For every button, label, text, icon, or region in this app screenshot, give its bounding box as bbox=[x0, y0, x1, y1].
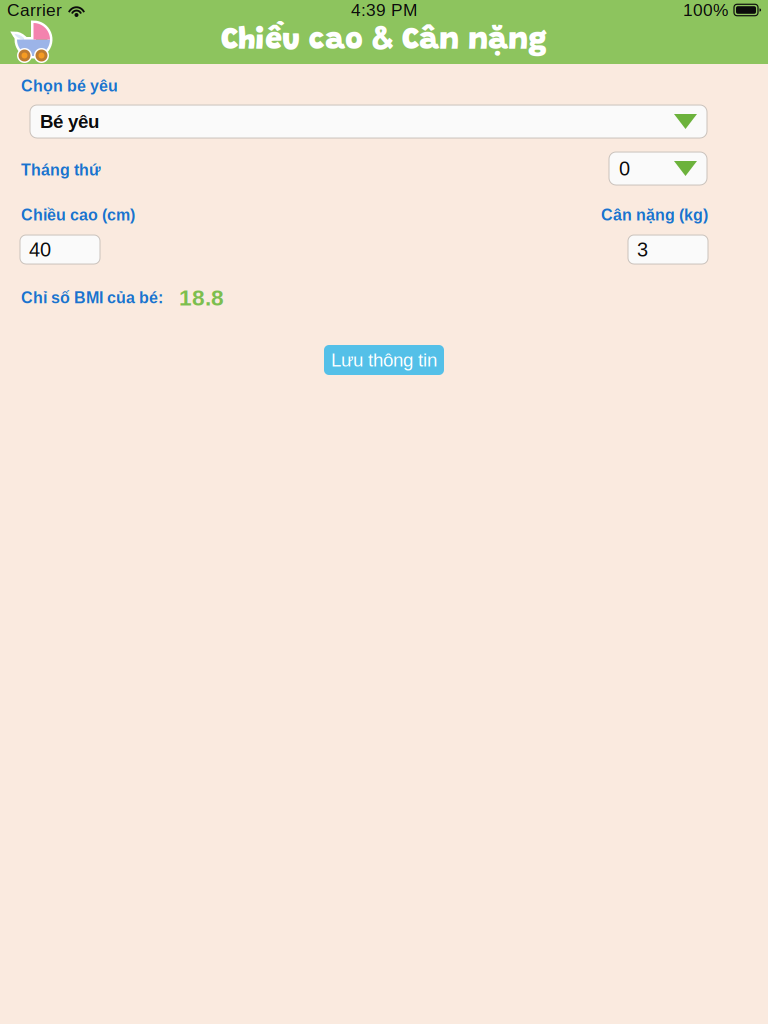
staticText: Chỉ số BMI của bé: bbox=[21, 289, 163, 307]
button[interactable]: 0 bbox=[609, 152, 707, 185]
staticText: 100% bbox=[683, 0, 728, 20]
staticText: Lưu thông tin bbox=[331, 350, 437, 370]
button[interactable]: 3 bbox=[628, 235, 708, 264]
staticText: 0 bbox=[619, 157, 630, 180]
button[interactable]: Bé yêu bbox=[30, 105, 707, 138]
staticText: Chiều cao (cm) bbox=[21, 206, 135, 224]
staticText: 18.8 bbox=[179, 285, 224, 310]
staticText: Carrier bbox=[7, 0, 62, 20]
staticText: 40 bbox=[29, 238, 51, 261]
button[interactable]: Lưu thông tin bbox=[324, 345, 444, 375]
button[interactable]: 40 bbox=[20, 235, 100, 264]
staticText: 3 bbox=[637, 238, 648, 261]
staticText: Tháng thứ bbox=[21, 161, 101, 179]
staticText: Chiều cao & Cân nặng bbox=[221, 26, 547, 57]
staticText: Cân nặng (kg) bbox=[601, 206, 708, 224]
staticText: Bé yêu bbox=[40, 111, 99, 132]
staticText: Chọn bé yêu bbox=[21, 77, 118, 95]
staticText: 4:39 PM bbox=[351, 0, 417, 20]
